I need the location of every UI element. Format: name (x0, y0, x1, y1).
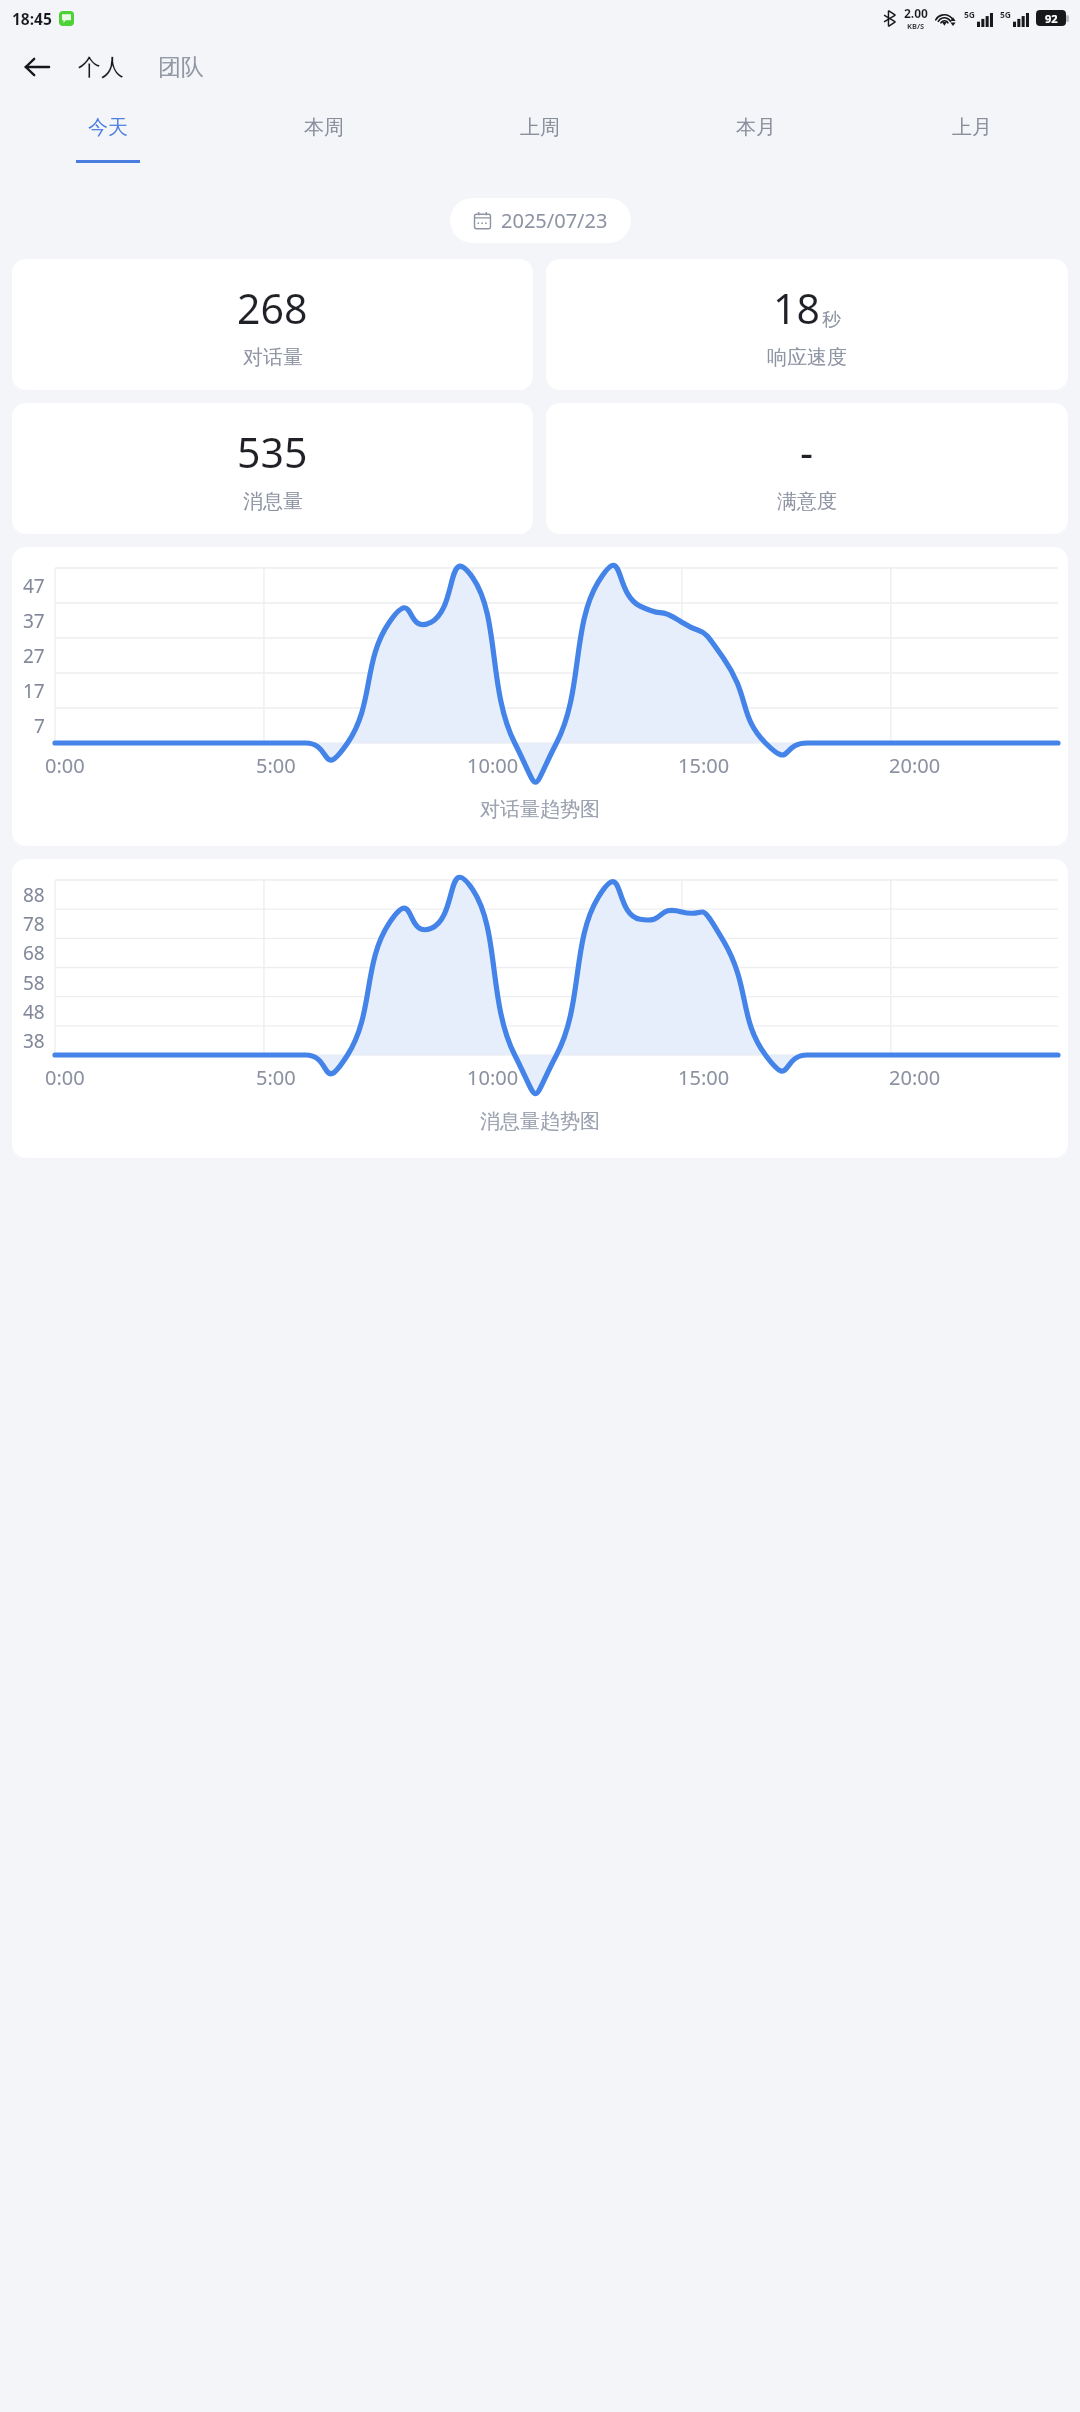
button[interactable]: 2025/07/23 (450, 198, 631, 243)
staticText: 17 (23, 678, 45, 704)
staticText: KB/S (907, 21, 925, 31)
staticText: 48 (23, 999, 45, 1025)
staticText: 47 (23, 573, 45, 599)
staticText: 2025/07/23 (501, 207, 608, 234)
staticText: 20:00 (889, 752, 941, 779)
button[interactable]: Back (10, 40, 64, 94)
staticText: 58 (23, 970, 45, 996)
staticText: 18:45 (12, 8, 52, 29)
staticText: 团队 (158, 53, 204, 82)
staticText: 88 (23, 882, 45, 908)
staticText: 0:00 (45, 1064, 85, 1091)
staticText: 10:00 (467, 752, 519, 779)
staticText: 5G (964, 9, 976, 21)
button[interactable]: 本周 (216, 98, 432, 184)
button[interactable]: 上周 (432, 98, 648, 184)
button[interactable]: 上月 (864, 98, 1080, 184)
button[interactable]: 个人 (72, 47, 130, 88)
staticText: 38 (23, 1028, 45, 1054)
staticText: 15:00 (678, 1064, 730, 1091)
staticText: 对话量 (243, 345, 303, 370)
staticText: 27 (23, 643, 45, 669)
staticText: 15:00 (678, 752, 730, 779)
staticText: 本月 (736, 115, 776, 140)
staticText: 响应速度 (767, 345, 847, 370)
button[interactable]: 团队 (152, 47, 210, 88)
staticText: 对话量趋势图 (480, 797, 600, 822)
staticText: 78 (23, 911, 45, 937)
staticText: 37 (23, 608, 45, 634)
staticText: 秒 (822, 308, 841, 332)
button[interactable]: 本月 (648, 98, 864, 184)
staticText: 消息量趋势图 (480, 1109, 600, 1134)
staticText: 上月 (952, 115, 992, 140)
button[interactable]: - (546, 403, 1068, 534)
staticText: 5:00 (256, 1064, 296, 1091)
staticText: 68 (23, 940, 45, 966)
staticText: 18 (773, 280, 820, 336)
staticText: 20:00 (889, 1064, 941, 1091)
staticText: 今天 (88, 115, 128, 140)
button[interactable]: 88 (12, 859, 1068, 1158)
staticText: 92 (1045, 11, 1058, 26)
staticText: 5G (1000, 9, 1012, 21)
staticText: 消息量 (243, 489, 303, 514)
staticText: 5:00 (256, 752, 296, 779)
button[interactable]: 268 (12, 259, 533, 390)
button[interactable]: 今天 (0, 98, 216, 184)
button[interactable]: 535 (12, 403, 533, 534)
staticText: 满意度 (777, 489, 837, 514)
staticText: - (800, 424, 814, 480)
staticText: 个人 (78, 53, 124, 82)
staticText: 本周 (304, 115, 344, 140)
button[interactable]: 47 (12, 547, 1068, 846)
button[interactable]: 18 (546, 259, 1068, 390)
staticText: 7 (34, 713, 45, 739)
staticText: 268 (237, 280, 308, 336)
staticText: 10:00 (467, 1064, 519, 1091)
staticText: 上周 (520, 115, 560, 140)
staticText: 0:00 (45, 752, 85, 779)
staticText: 2.00 (904, 5, 928, 21)
staticText: 535 (237, 424, 308, 480)
